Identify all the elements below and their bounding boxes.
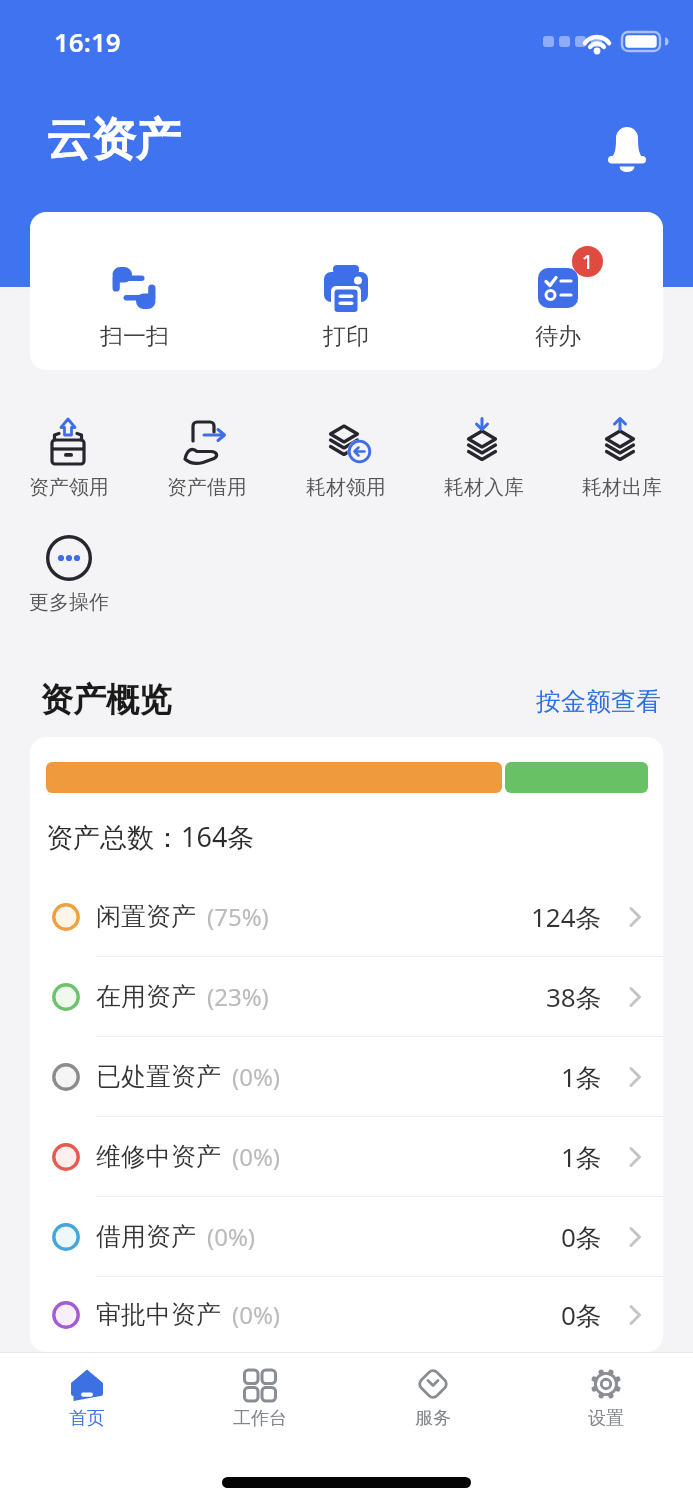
staticText: (0%) <box>232 1060 281 1093</box>
staticText: 服务 <box>415 1407 451 1430</box>
button[interactable]: 更多操作 <box>0 532 138 615</box>
button[interactable]: 待办 <box>488 264 628 351</box>
button[interactable]: 审批中资产 <box>30 1277 663 1352</box>
button[interactable]: 耗材出库 <box>553 417 691 500</box>
staticText: 耗材领用 <box>306 475 386 500</box>
button[interactable]: 闲置资产 <box>30 877 663 957</box>
staticText: 打印 <box>323 322 369 351</box>
staticText: 耗材出库 <box>582 475 662 500</box>
staticText: 闲置资产 <box>96 901 196 932</box>
staticText: 0条 <box>561 1219 602 1255</box>
button[interactable]: 服务 <box>346 1368 519 1430</box>
staticText: 借用资产 <box>96 1221 196 1252</box>
button[interactable]: 借用资产 <box>30 1197 663 1277</box>
staticText: 审批中资产 <box>96 1299 221 1330</box>
staticText: 已处置资产 <box>96 1061 221 1092</box>
button[interactable]: 设置 <box>519 1368 692 1430</box>
staticText: 1条 <box>561 1059 602 1095</box>
staticText: 资产借用 <box>167 475 247 500</box>
staticText: 资产领用 <box>29 475 109 500</box>
button[interactable]: 耗材领用 <box>277 417 415 500</box>
staticText: 耗材入库 <box>444 475 524 500</box>
staticText: 在用资产 <box>96 981 196 1012</box>
button[interactable]: 维修中资产 <box>30 1117 663 1197</box>
staticText: 云资产 <box>46 112 181 169</box>
button[interactable]: 已处置资产 <box>30 1037 663 1117</box>
staticText: 更多操作 <box>29 590 109 615</box>
button[interactable]: 打印 <box>276 264 416 351</box>
button[interactable]: 耗材入库 <box>415 417 553 500</box>
staticText: 工作台 <box>233 1407 287 1430</box>
button[interactable]: 在用资产 <box>30 957 663 1037</box>
staticText: (0%) <box>232 1140 281 1173</box>
staticText: 维修中资产 <box>96 1141 221 1172</box>
staticText: 资产总数：164条 <box>46 818 255 855</box>
staticText: (75%) <box>207 900 269 933</box>
staticText: (0%) <box>232 1298 281 1331</box>
staticText: 0条 <box>561 1297 602 1333</box>
staticText: 38条 <box>546 979 602 1015</box>
staticText: 124条 <box>531 899 602 935</box>
staticText: 设置 <box>588 1407 624 1430</box>
button[interactable] <box>605 124 649 174</box>
button[interactable]: 工作台 <box>173 1368 346 1430</box>
button[interactable]: 资产领用 <box>0 417 138 500</box>
button[interactable]: 首页 <box>0 1368 173 1430</box>
staticText: (0%) <box>207 1220 256 1253</box>
staticText: 资产概览 <box>40 679 172 721</box>
button[interactable]: 按金额查看 <box>536 686 661 717</box>
staticText: 16:19 <box>54 24 121 59</box>
staticText: (23%) <box>207 980 269 1013</box>
button[interactable]: 资产借用 <box>138 417 276 500</box>
staticText: 1 <box>582 249 593 275</box>
staticText: 扫一扫 <box>100 322 169 351</box>
staticText: 1条 <box>561 1139 602 1175</box>
button[interactable]: 扫一扫 <box>64 264 204 351</box>
staticText: 待办 <box>535 322 581 351</box>
staticText: 首页 <box>69 1407 105 1430</box>
